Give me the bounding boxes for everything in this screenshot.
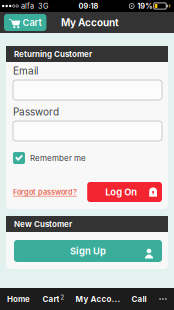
button[interactable]: Cart <box>37 288 70 310</box>
staticText: 19% <box>137 2 152 10</box>
staticText: Email <box>13 65 38 77</box>
staticText: Password <box>13 106 59 118</box>
button[interactable]: Home <box>0 288 37 310</box>
staticText: My Acco... <box>75 294 120 304</box>
staticText: Cart <box>22 17 41 28</box>
staticText: Call <box>131 294 146 304</box>
staticText: Home <box>7 294 30 304</box>
staticText: Forgot password? <box>13 188 77 196</box>
staticText: New Customer <box>14 219 72 229</box>
button[interactable]: Log On <box>87 182 162 202</box>
staticText: Remember me <box>30 153 86 163</box>
staticText: Cart <box>42 294 59 304</box>
button[interactable]: Forgot password? <box>13 182 77 202</box>
button[interactable]: Sign Up <box>14 240 162 262</box>
staticText: Sign Up <box>70 245 106 257</box>
button[interactable]: Cart <box>4 14 46 31</box>
button[interactable]: Call <box>126 288 152 310</box>
staticText: Log On <box>105 186 137 198</box>
staticText: Returning Customer <box>14 49 92 59</box>
button[interactable]: Remember me <box>13 152 162 164</box>
staticText: My Account <box>61 16 119 29</box>
staticText: alfa 3G <box>21 2 48 10</box>
button[interactable]: My Acco... <box>70 288 126 310</box>
staticText: 09:18 <box>78 2 98 10</box>
staticText: 2 <box>61 294 65 301</box>
button[interactable]: More <box>152 288 174 310</box>
